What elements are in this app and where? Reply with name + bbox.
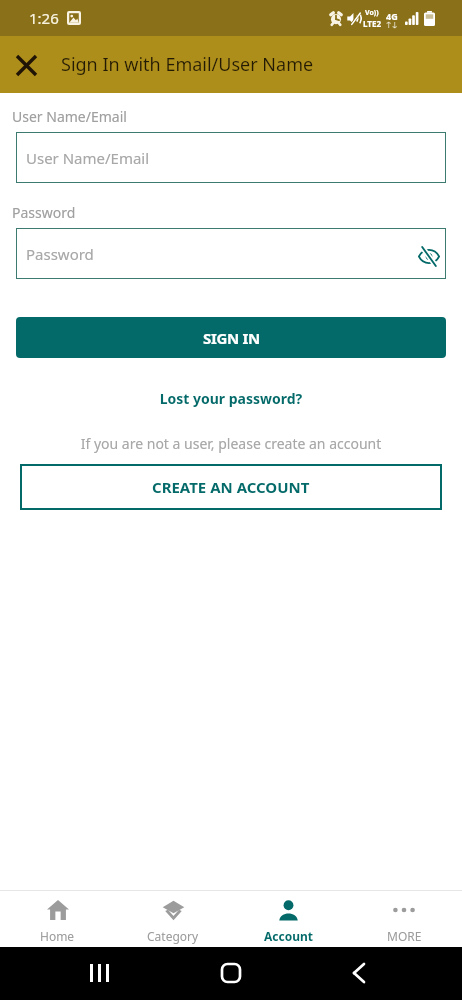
button[interactable]: Lost your password? — [0, 389, 462, 408]
button[interactable]: Show password — [413, 238, 445, 270]
staticText: If you are not a user, please create an … — [0, 434, 462, 453]
staticText: LTE2 — [363, 18, 381, 29]
button[interactable]: Close — [9, 48, 43, 82]
staticText: CREATE AN ACCOUNT — [152, 477, 310, 497]
staticText: SIGN IN — [203, 328, 260, 348]
staticText: Vo)) — [365, 8, 379, 18]
staticText: Account — [264, 928, 313, 944]
staticText: Password — [26, 244, 94, 264]
button[interactable]: Home — [203, 947, 259, 1000]
button[interactable]: MORE — [346, 891, 462, 947]
staticText: User Name/Email — [26, 148, 150, 168]
button[interactable]: Back — [335, 947, 391, 1000]
button[interactable]: Account — [230, 891, 346, 947]
button[interactable]: CREATE AN ACCOUNT — [20, 464, 442, 510]
button[interactable]: Category — [115, 891, 230, 947]
staticText: 4G — [386, 10, 398, 22]
button[interactable]: SIGN IN — [16, 317, 446, 358]
button[interactable]: User Name/Email — [16, 132, 446, 183]
button[interactable]: Home — [0, 891, 115, 947]
staticText: Home — [40, 928, 75, 944]
staticText: 1:26 — [29, 8, 59, 28]
button[interactable]: Recents — [71, 947, 127, 1000]
staticText: Password — [12, 203, 76, 222]
staticText: MORE — [387, 928, 422, 944]
staticText: Category — [147, 928, 199, 944]
staticText: User Name/Email — [12, 107, 127, 126]
staticText: Sign In with Email/User Name — [61, 52, 314, 77]
button[interactable]: Password — [16, 228, 446, 279]
